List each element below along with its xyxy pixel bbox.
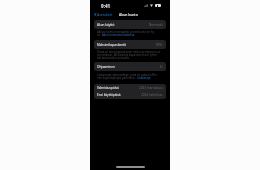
staticText: Maksimikapasiteetti (97, 43, 127, 47)
staticText: een akkuun. Alhaisempi kapasiteetti voi … (97, 53, 157, 57)
button[interactable]: Maksimikapasiteetti (94, 40, 166, 49)
button[interactable]: Asetukset (93, 11, 114, 18)
staticText: Lataamista optimoidaan, jotta se vastais… (97, 73, 158, 77)
staticText: Akkusi toimii normaalisti ja sen kunto o… (97, 30, 155, 34)
staticText: Tämä on akun kapasiteetin mitta verrattu… (97, 50, 160, 54)
button[interactable]: Valmistuspäivä (94, 84, 166, 91)
staticText: 2024 helmikuu (141, 93, 163, 97)
staticText: Ei (160, 65, 163, 69)
staticText: tää latausvälien pituutta. (97, 56, 130, 60)
staticText: Akun kunnosta lisätietoa (102, 33, 135, 37)
staticText: Asetukset (97, 12, 113, 17)
staticText: Ohjaaminen (97, 65, 115, 69)
staticText: Normaali (149, 23, 163, 27)
staticText: Akun kunto (119, 12, 138, 16)
staticText: Ensi käyttöpäivä (97, 93, 121, 97)
button[interactable]: Ohjaaminen (94, 62, 166, 71)
button[interactable]: Akun käyttö (94, 20, 166, 29)
staticText: 2023 marraskuu (139, 86, 163, 90)
button[interactable]: Ensi käyttöpäivä (94, 91, 166, 98)
staticText: 9:41 (101, 3, 111, 9)
staticText: nen käyttötapojasi parhaiten. (97, 76, 137, 80)
staticText: Valmistuspäivä (97, 86, 119, 90)
staticText: 89% (156, 43, 163, 47)
staticText: vä. (97, 33, 102, 37)
staticText: Akun käyttö (97, 23, 115, 27)
staticText: Lisätietoja (137, 76, 151, 80)
